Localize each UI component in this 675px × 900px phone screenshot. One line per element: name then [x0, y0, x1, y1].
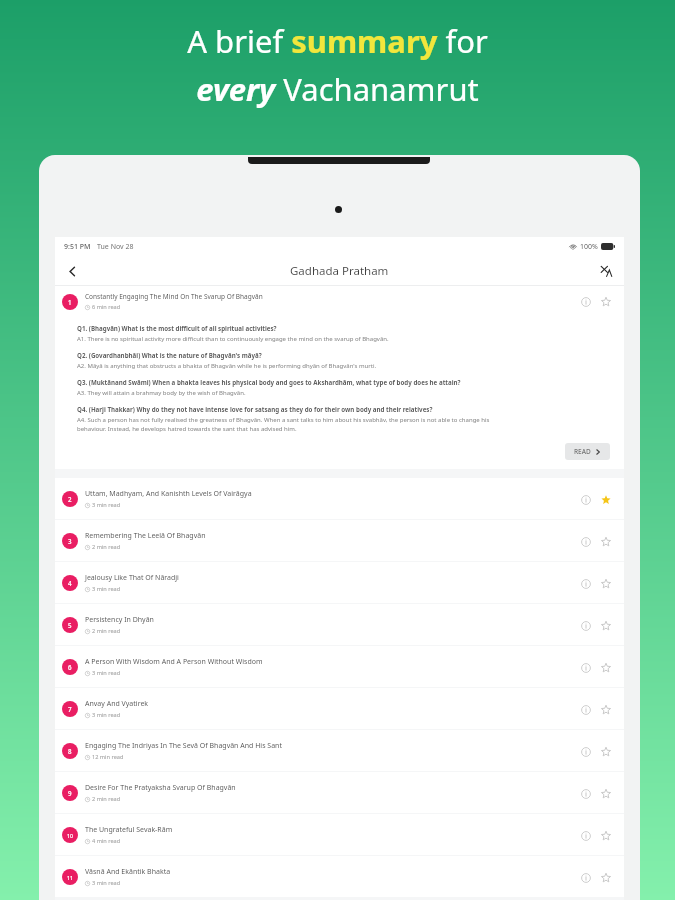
staticText: Gadhada Pratham	[290, 263, 389, 279]
staticText: behaviour. Instead, he develops hatred t…	[77, 425, 610, 433]
button[interactable]: Info	[577, 701, 594, 718]
staticText: Constantly Engaging The Mind On The Svar…	[85, 292, 571, 301]
staticText: 2	[68, 495, 72, 503]
staticText: Q3. (Muktānand Swāmi) When a bhakta leav…	[77, 378, 610, 386]
button[interactable]: READ	[565, 443, 610, 460]
button[interactable]: Bookmark	[597, 743, 614, 760]
button[interactable]: Info	[577, 743, 594, 760]
button[interactable]: Translate	[593, 258, 619, 284]
button[interactable]: 10	[55, 814, 624, 855]
button[interactable]: 7	[55, 688, 624, 729]
staticText: A Person With Wisdom And A Person Withou…	[85, 657, 571, 667]
button[interactable]: Info	[577, 785, 594, 802]
staticText: A3. They will attain a brahmay body by t…	[77, 389, 610, 397]
button[interactable]: Bookmark	[597, 293, 614, 310]
button[interactable]: 1	[55, 286, 624, 469]
staticText: 2 min read	[92, 795, 121, 803]
staticText: 9:51 PM	[64, 242, 91, 252]
button[interactable]: Info	[577, 491, 594, 508]
staticText: READ	[574, 447, 591, 456]
staticText: 6	[68, 663, 72, 671]
staticText: 8	[68, 747, 72, 755]
button[interactable]: Bookmark	[597, 617, 614, 634]
button[interactable]: Bookmark	[597, 575, 614, 592]
staticText: 5	[68, 621, 72, 629]
staticText: Q2. (Govardhanbhāi) What is the nature o…	[77, 351, 610, 359]
staticText: 6 min read	[92, 303, 121, 311]
staticText: Persistency In Dhyān	[85, 615, 571, 625]
button[interactable]: 9	[55, 772, 624, 813]
staticText: Engaging The Indriyas In The Sevā Of Bha…	[85, 741, 571, 751]
staticText: 2 min read	[92, 543, 121, 551]
button[interactable]: 6	[55, 646, 624, 687]
button[interactable]: Info	[577, 575, 594, 592]
staticText: 1	[68, 298, 72, 306]
button[interactable]: Bookmark	[597, 827, 614, 844]
staticText: 3	[68, 537, 72, 545]
staticText: 3 min read	[92, 501, 121, 509]
staticText: 11	[67, 874, 73, 881]
staticText: 3 min read	[92, 585, 121, 593]
staticText: Vāsnā And Ekāntik Bhakta	[85, 867, 571, 877]
staticText: 10	[67, 832, 73, 839]
button[interactable]: 8	[55, 730, 624, 771]
staticText: 4 min read	[92, 837, 121, 845]
staticText: Remembering The Leelā Of Bhagvān	[85, 531, 571, 541]
staticText: Anvay And Vyatirek	[85, 699, 571, 709]
button[interactable]: Bookmark	[597, 659, 614, 676]
button[interactable]: Bookmark	[597, 785, 614, 802]
button[interactable]: Info	[577, 869, 594, 886]
button[interactable]: 2	[55, 478, 624, 519]
staticText: 12 min read	[92, 753, 124, 761]
staticText: The Ungrateful Sevak-Rām	[85, 825, 571, 835]
staticText: A4. Such a person has not fully realised…	[77, 416, 610, 424]
staticText: A1. There is no spiritual activity more …	[77, 335, 610, 343]
staticText: Desire For The Pratyaksha Svarup Of Bhag…	[85, 783, 571, 793]
staticText: Q1. (Bhagvān) What is the most difficult…	[77, 324, 610, 332]
staticText: Uttam, Madhyam, And Kanishth Levels Of V…	[85, 489, 571, 499]
staticText: 100%	[580, 242, 598, 252]
staticText: 3 min read	[92, 711, 121, 719]
button[interactable]: Info	[577, 533, 594, 550]
button[interactable]: Info	[577, 617, 594, 634]
button[interactable]: Bookmark	[597, 701, 614, 718]
staticText: every Vachanamrut	[196, 68, 479, 110]
staticText: 3 min read	[92, 669, 121, 677]
button[interactable]: 4	[55, 562, 624, 603]
staticText: 4	[68, 579, 72, 587]
button[interactable]: Info	[577, 827, 594, 844]
staticText: A2. Māyā is anything that obstructs a bh…	[77, 362, 610, 370]
button[interactable]: Info	[577, 659, 594, 676]
button[interactable]: Bookmark	[597, 533, 614, 550]
staticText: A brief summary for	[187, 20, 488, 62]
button[interactable]: Remove bookmark	[597, 491, 614, 508]
staticText: 3 min read	[92, 879, 121, 887]
staticText: 9	[68, 789, 72, 797]
button[interactable]: 3	[55, 520, 624, 561]
button[interactable]: 11	[55, 856, 624, 897]
staticText: 7	[68, 705, 72, 713]
button[interactable]: Info	[577, 293, 594, 310]
staticText: Jealousy Like That Of Nāradji	[85, 573, 571, 583]
button[interactable]: Bookmark	[597, 869, 614, 886]
staticText: Q4. (Harji Thakkar) Why do they not have…	[77, 405, 610, 413]
staticText: Tue Nov 28	[97, 242, 134, 252]
button[interactable]: Back	[59, 258, 85, 284]
button[interactable]: 5	[55, 604, 624, 645]
staticText: 2 min read	[92, 627, 121, 635]
